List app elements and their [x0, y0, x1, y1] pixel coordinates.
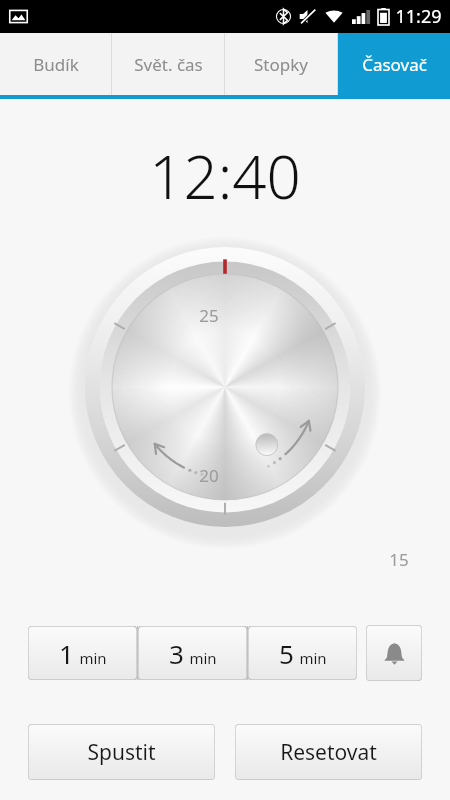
staticText: Stopky [254, 53, 308, 76]
button[interactable]: Svět. čas [112, 33, 224, 95]
button[interactable]: Budík [0, 33, 111, 95]
staticText: 3 [169, 636, 184, 671]
staticText: Resetovat [280, 738, 377, 767]
staticText: 25 [199, 304, 219, 327]
button[interactable]: Resetovat [235, 724, 422, 780]
button[interactable]: Timer dial [0, 235, 450, 575]
button[interactable]: Stopky [225, 33, 337, 95]
staticText: min [189, 648, 217, 668]
button[interactable]: Spustit [28, 724, 215, 780]
staticText: 11:29 [395, 4, 442, 29]
button[interactable]: 1 [28, 626, 137, 680]
button[interactable]: Časovač [338, 33, 450, 95]
staticText: Spustit [87, 738, 156, 767]
staticText: 15 [389, 548, 409, 571]
staticText: min [79, 648, 107, 668]
button[interactable]: Alarm sound [366, 625, 422, 681]
staticText: Budík [33, 53, 79, 76]
staticText: 5 [279, 636, 294, 671]
staticText: min [299, 648, 327, 668]
button[interactable]: 5 [248, 626, 357, 680]
staticText: Svět. čas [134, 53, 203, 76]
staticText: 12:40 [149, 135, 301, 217]
staticText: 20 [199, 464, 219, 487]
staticText: 1 [59, 636, 74, 671]
button[interactable]: 3 [138, 626, 247, 680]
staticText: Časovač [362, 53, 427, 76]
